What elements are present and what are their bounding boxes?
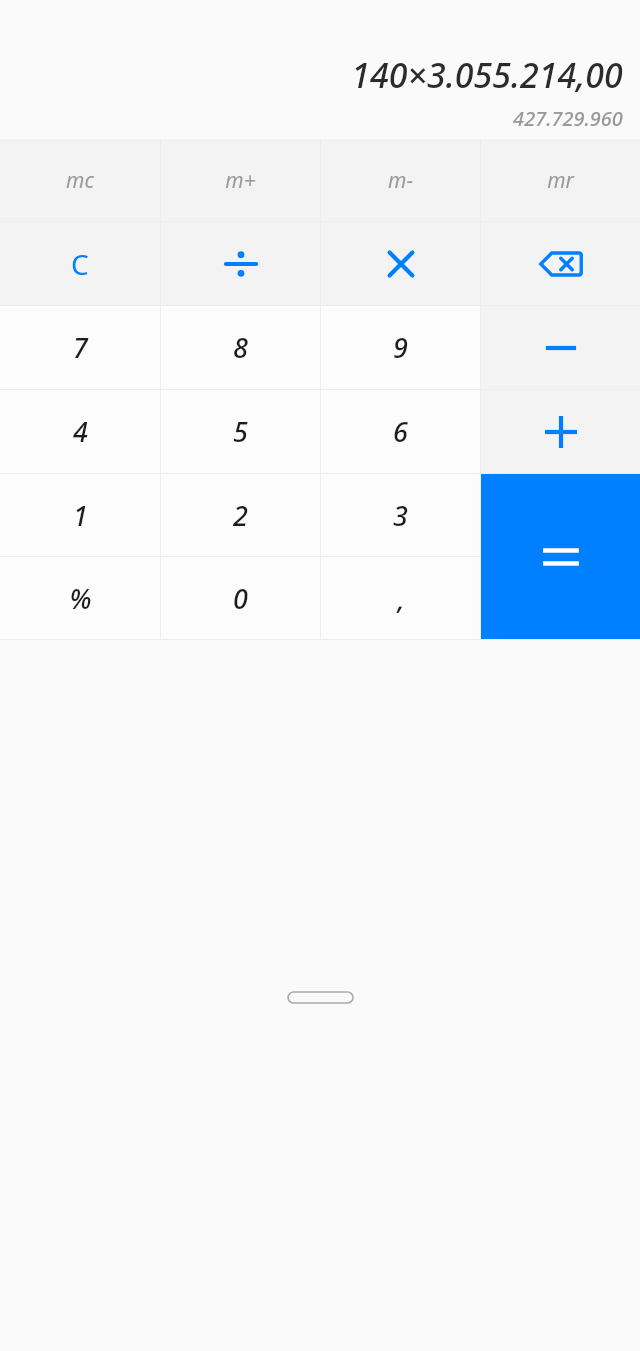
staticText: 5 [233, 413, 248, 450]
staticText: 6 [393, 413, 408, 450]
staticText: 1 [73, 497, 88, 534]
button[interactable]: 5 [161, 390, 320, 473]
button[interactable]: 9 [321, 306, 480, 389]
button[interactable]: mr [481, 139, 640, 221]
button[interactable]: Divide [161, 222, 320, 305]
button[interactable]: 7 [0, 306, 160, 389]
button[interactable]: 0 [161, 557, 320, 639]
staticText: 2 [233, 497, 248, 534]
staticText: % [69, 580, 92, 617]
button[interactable]: 6 [321, 390, 480, 473]
staticText: 427.729.960 [513, 105, 623, 132]
staticText: m- [388, 166, 413, 195]
button[interactable]: m+ [161, 139, 320, 221]
staticText: 4 [73, 413, 88, 450]
staticText: , [397, 580, 405, 617]
button[interactable]: Multiply [321, 222, 480, 305]
button[interactable]: Subtract [481, 306, 640, 389]
button[interactable]: 8 [161, 306, 320, 389]
button[interactable]: 4 [0, 390, 160, 473]
button[interactable]: Equals [481, 474, 640, 639]
staticText: mr [547, 166, 574, 195]
staticText: 9 [393, 329, 408, 366]
staticText: 7 [73, 329, 88, 366]
staticText: 8 [233, 329, 248, 366]
button[interactable]: m- [321, 139, 480, 221]
button[interactable]: Backspace [481, 222, 640, 305]
button[interactable]: mc [0, 139, 160, 221]
staticText: mc [66, 166, 94, 195]
staticText: 0 [233, 580, 248, 617]
staticText: 3 [393, 497, 408, 534]
staticText: C [71, 245, 89, 283]
staticText: 140×3.055.214,00 [351, 52, 623, 98]
button[interactable]: Add [481, 390, 640, 473]
button[interactable]: 1 [0, 474, 160, 556]
button[interactable]: , [321, 557, 480, 639]
button[interactable]: C [0, 222, 160, 305]
staticText: m+ [225, 166, 256, 195]
button[interactable]: 2 [161, 474, 320, 556]
button[interactable]: % [0, 557, 160, 639]
button[interactable]: 3 [321, 474, 480, 556]
